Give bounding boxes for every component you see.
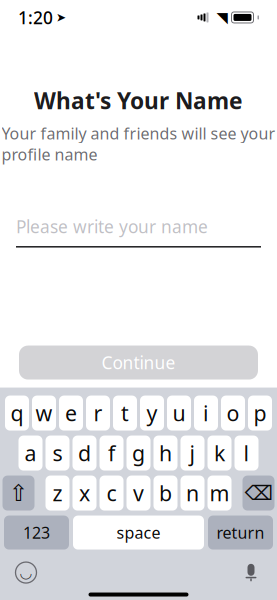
staticText: ⇧ <box>9 480 28 506</box>
button[interactable]: return <box>208 516 273 550</box>
button[interactable]: n <box>180 476 204 511</box>
button[interactable]: b <box>153 476 177 511</box>
staticText: ⌫ <box>244 482 272 504</box>
button[interactable]: i <box>194 396 218 431</box>
staticText: Continue <box>101 351 175 374</box>
staticText: u <box>172 399 185 427</box>
button[interactable]: k <box>207 436 231 471</box>
button[interactable]: z <box>45 476 69 511</box>
button[interactable]: a <box>18 436 42 471</box>
button[interactable]: t <box>113 396 137 431</box>
staticText: Your family and friends will see your pr… <box>1 122 275 165</box>
staticText: y <box>146 399 157 427</box>
staticText: h <box>159 439 172 467</box>
staticText: v <box>133 479 144 507</box>
button[interactable]: s <box>45 436 69 471</box>
staticText: What's Your Name <box>34 85 243 115</box>
staticText: 123 <box>23 522 50 543</box>
button[interactable]: j <box>180 436 204 471</box>
staticText: 1:20 <box>18 6 53 29</box>
button[interactable]: space <box>73 516 204 550</box>
button[interactable]: d <box>72 436 96 471</box>
button[interactable]: Delete <box>242 476 274 511</box>
button[interactable]: m <box>207 476 231 511</box>
button[interactable]: x <box>72 476 96 511</box>
button[interactable]: Shift <box>2 476 34 511</box>
staticText: w <box>35 399 52 427</box>
staticText: ◥ <box>216 9 227 26</box>
button[interactable]: p <box>248 396 272 431</box>
staticText: r <box>93 399 102 427</box>
staticText: f <box>108 439 115 467</box>
staticText: p <box>253 399 266 427</box>
staticText: x <box>79 479 90 507</box>
staticText: s <box>52 439 62 467</box>
staticText: q <box>10 399 23 427</box>
staticText: e <box>65 399 77 427</box>
button[interactable]: v <box>126 476 150 511</box>
staticText: o <box>226 399 239 427</box>
staticText: k <box>214 439 225 467</box>
staticText: ➤ <box>56 11 66 24</box>
staticText: Please write your name <box>16 215 208 238</box>
button[interactable]: Dictate <box>234 558 268 588</box>
staticText: a <box>24 439 36 467</box>
staticText: c <box>106 479 116 507</box>
button[interactable]: h <box>153 436 177 471</box>
button[interactable]: Emoji <box>9 558 43 588</box>
button[interactable]: g <box>126 436 150 471</box>
button[interactable]: e <box>59 396 83 431</box>
staticText: g <box>132 439 145 467</box>
staticText: b <box>159 479 172 507</box>
button[interactable]: y <box>140 396 164 431</box>
staticText: i <box>203 399 209 427</box>
button[interactable]: u <box>167 396 191 431</box>
staticText: ◡ <box>19 564 32 581</box>
staticText: return <box>216 522 264 543</box>
staticText: l <box>243 439 249 467</box>
button[interactable]: c <box>99 476 123 511</box>
button[interactable]: r <box>86 396 110 431</box>
button[interactable]: 123 <box>4 516 69 550</box>
button[interactable]: w <box>32 396 56 431</box>
staticText: j <box>189 439 195 467</box>
staticText: z <box>52 479 62 507</box>
staticText: t <box>121 399 129 427</box>
staticText: d <box>78 439 91 467</box>
button[interactable]: f <box>99 436 123 471</box>
staticText: n <box>186 479 199 507</box>
button[interactable]: o <box>221 396 245 431</box>
button[interactable]: l <box>234 436 258 471</box>
button[interactable]: Continue <box>19 346 258 380</box>
staticText: m <box>209 479 229 507</box>
staticText: space <box>116 522 160 543</box>
button[interactable]: q <box>5 396 29 431</box>
